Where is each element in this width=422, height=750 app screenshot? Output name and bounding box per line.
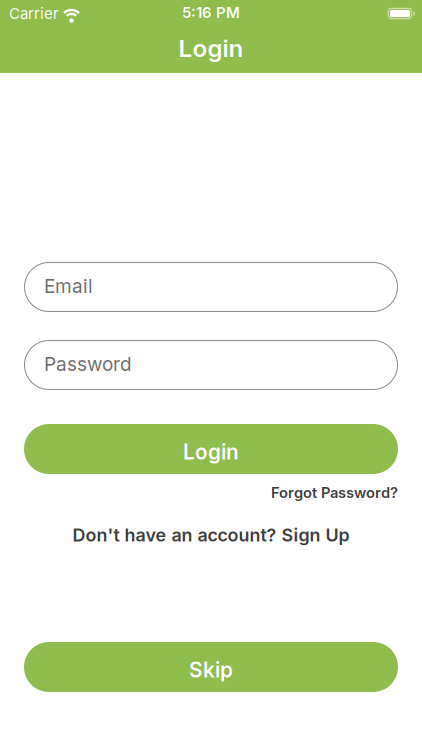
staticText: 5:16 PM xyxy=(182,4,240,21)
staticText: Email xyxy=(44,275,93,297)
staticText: Forgot Password? xyxy=(271,484,398,501)
staticText: Carrier xyxy=(9,5,59,22)
staticText: Password xyxy=(44,353,132,375)
staticText: Login xyxy=(183,440,239,464)
staticText: Don't have an account? Sign Up xyxy=(72,524,349,545)
staticText: Login xyxy=(178,34,243,62)
staticText: Skip xyxy=(189,658,233,682)
